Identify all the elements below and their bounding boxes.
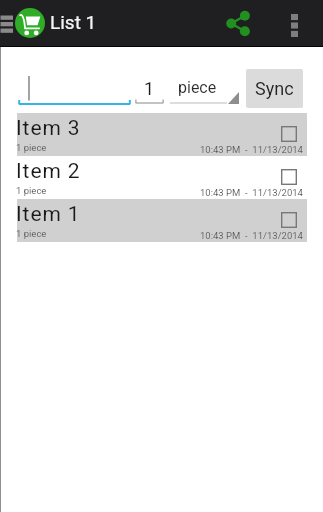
staticText: Item 2 [16, 159, 81, 184]
staticText: 10:43 PM - 11/13/2014 [200, 230, 303, 241]
button[interactable]: Shopping list [14, 0, 46, 47]
staticText: Item 3 [16, 116, 81, 141]
button[interactable]: Navigate up [0, 0, 14, 47]
staticText: Sync [255, 78, 294, 99]
button[interactable]: piece [170, 73, 239, 104]
button[interactable]: 1 [135, 73, 164, 104]
staticText: 1 piece [16, 142, 47, 153]
staticText: 1 [144, 78, 155, 99]
staticText: 1 piece [16, 228, 47, 239]
staticText: List 1 [50, 11, 97, 33]
staticText: Item 1 [16, 202, 81, 227]
button[interactable]: More options [277, 0, 311, 47]
staticText: 10:43 PM - 11/13/2014 [200, 144, 303, 155]
button[interactable] [18, 73, 131, 105]
button[interactable]: Item 3 [17, 113, 307, 156]
button[interactable]: Share [214, 0, 262, 47]
button[interactable]: Sync [246, 69, 303, 108]
staticText: 10:43 PM - 11/13/2014 [200, 187, 303, 198]
button[interactable]: Item 1 [17, 199, 307, 242]
button[interactable]: Item 2 [17, 156, 307, 199]
staticText: 1 piece [16, 185, 47, 196]
staticText: piece [178, 78, 217, 97]
